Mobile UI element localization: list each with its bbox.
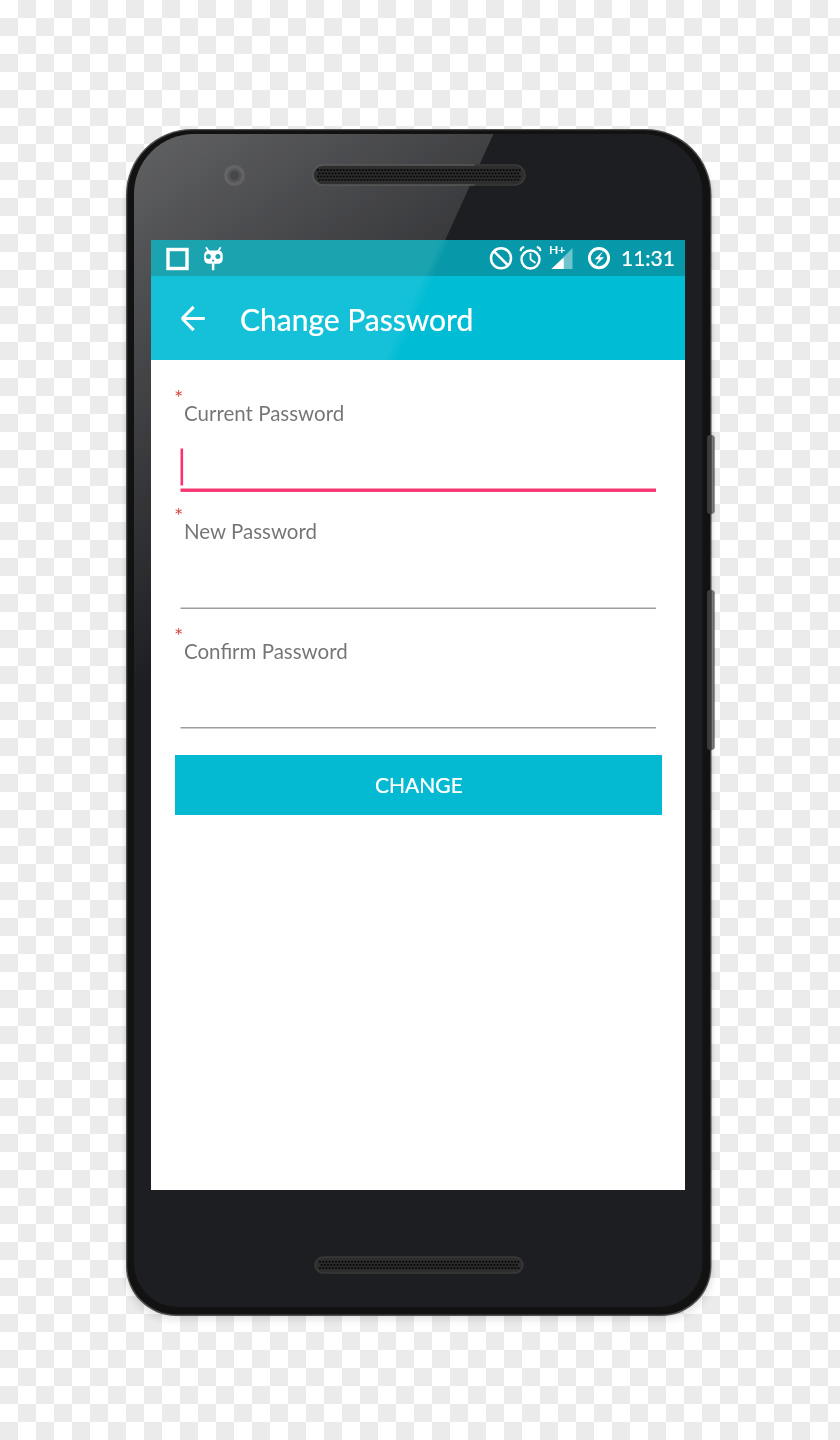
button[interactable]: CHANGE	[175, 755, 662, 815]
staticText: *	[174, 384, 184, 410]
staticText: Change Password	[240, 301, 474, 337]
staticText: Current Password	[184, 401, 345, 426]
staticText: 11:31	[621, 245, 675, 270]
button[interactable]: Back	[167, 285, 221, 351]
staticText: Confirm Password	[184, 639, 348, 664]
staticText: H+	[549, 242, 566, 256]
staticText: *	[174, 502, 184, 528]
staticText: New Password	[184, 519, 318, 544]
staticText: *	[174, 622, 184, 648]
staticText: CHANGE	[375, 772, 463, 797]
